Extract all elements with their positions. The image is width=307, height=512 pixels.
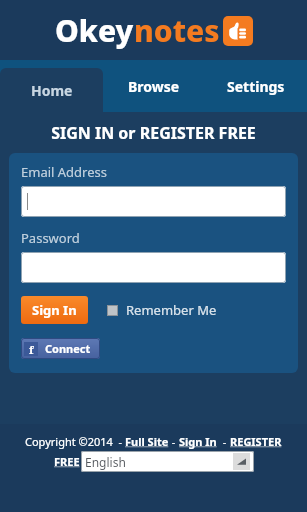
staticText: Connect [45,341,91,356]
staticText: Copyright ©2014 - [25,434,125,449]
button[interactable]: f [21,338,100,359]
button[interactable]: REGISTER [230,434,282,449]
staticText: notes [134,10,220,51]
staticText: Email Address [21,163,107,181]
staticText: Home [31,81,73,100]
staticText: Okey [55,10,134,51]
staticText: - [169,434,179,449]
other: Open language list [233,453,250,470]
staticText: Browse [128,77,180,96]
staticText: f [29,342,34,356]
staticText: Sign In [32,301,77,319]
button[interactable]: Full Site [125,434,169,449]
staticText: Settings [227,77,285,96]
button[interactable]: English [81,451,254,472]
button[interactable]: Home [0,68,103,112]
button[interactable]: Sign In [21,296,88,324]
button[interactable] [21,252,286,283]
staticText: English [85,454,126,470]
staticText: Password [21,229,80,247]
button[interactable]: Remember Me [107,301,217,319]
staticText: - [217,434,230,449]
button[interactable]: Settings [205,60,307,112]
button[interactable]: FREE [54,454,80,469]
staticText: SIGN IN or REGISTER FREE [51,122,256,144]
button[interactable]: Browse [103,60,205,112]
button[interactable]: Sign In [179,434,217,449]
button[interactable] [21,186,286,217]
staticText: Remember Me [126,301,217,319]
